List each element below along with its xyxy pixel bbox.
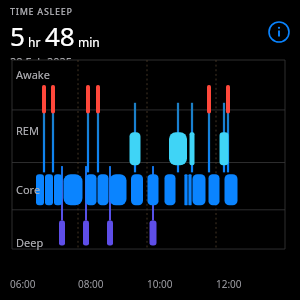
button[interactable]: Information about sleep stages <box>268 21 290 43</box>
button[interactable]: Awake <box>0 60 300 274</box>
staticText: Core <box>16 182 41 197</box>
staticText: REM <box>16 123 39 138</box>
staticText: 08:00 <box>78 277 104 291</box>
staticText: 10:00 <box>147 277 173 291</box>
staticText: hr <box>28 34 41 50</box>
staticText: 28 Feb 2025 <box>10 54 73 60</box>
staticText: TIME ASLEEP <box>10 5 73 17</box>
staticText: Deep <box>16 235 44 250</box>
staticText: 12:00 <box>216 277 242 291</box>
staticText: 48 <box>45 18 75 53</box>
staticText: 06:00 <box>10 277 36 291</box>
staticText: Awake <box>16 67 50 82</box>
staticText: min <box>78 34 100 50</box>
staticText: 5 <box>10 18 25 53</box>
